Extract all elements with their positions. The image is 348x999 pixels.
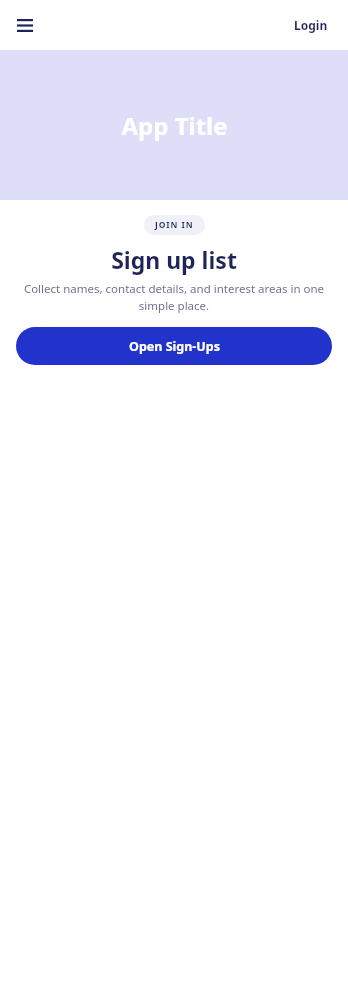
staticText: JOIN IN xyxy=(155,219,194,231)
staticText: Open Sign-Ups xyxy=(129,338,220,355)
staticText: Sign up list xyxy=(111,244,237,275)
staticText: Login xyxy=(294,17,328,33)
staticText: Collect names, contact details, and inte… xyxy=(16,281,332,313)
staticText: App Title xyxy=(121,109,228,142)
button[interactable]: Open Sign-Ups xyxy=(16,327,332,365)
button[interactable]: JOIN IN xyxy=(144,215,205,235)
button[interactable]: Login xyxy=(286,11,336,39)
button[interactable]: Menu xyxy=(8,8,42,42)
